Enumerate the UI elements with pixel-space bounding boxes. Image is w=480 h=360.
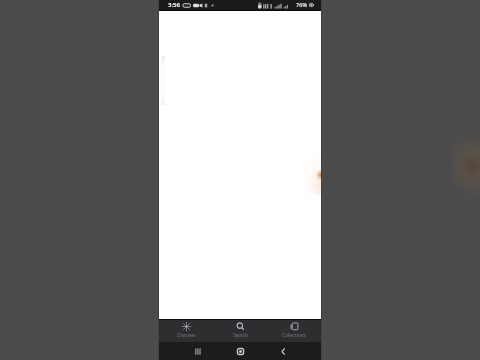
button[interactable]: Discover [159, 320, 213, 342]
staticText: 3:56 [168, 1, 180, 9]
staticText: Discover [177, 332, 196, 338]
staticText: Search [233, 332, 248, 338]
button[interactable]: Home [219, 342, 262, 360]
button[interactable]: Collections [267, 320, 321, 342]
button[interactable]: Search [213, 320, 267, 342]
button[interactable]: Back [262, 342, 305, 360]
staticText: 76% [296, 1, 308, 9]
staticText: Collections [282, 332, 306, 338]
button[interactable]: Recent apps [175, 342, 219, 360]
